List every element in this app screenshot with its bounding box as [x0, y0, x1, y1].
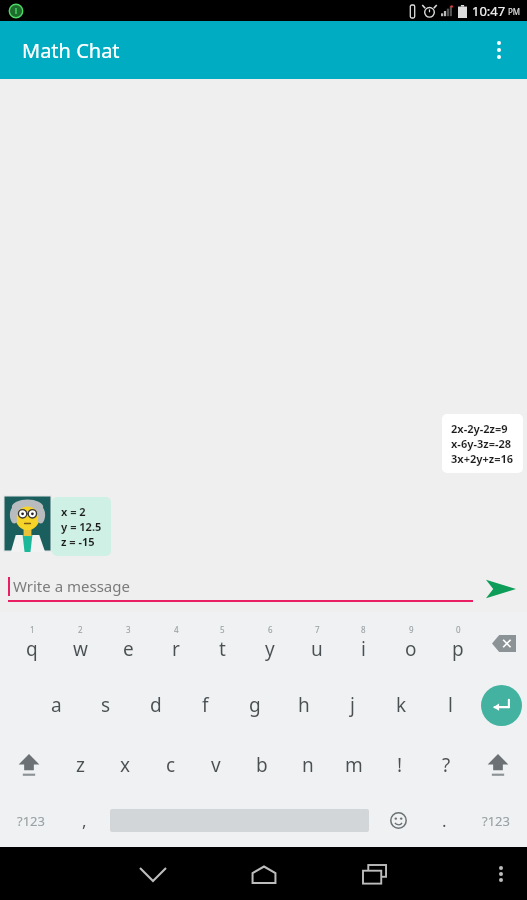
button[interactable]: 1	[8, 612, 56, 674]
button[interactable]: Backspace	[481, 612, 527, 674]
staticText: ,	[82, 809, 87, 832]
button[interactable]: c	[148, 736, 193, 794]
button[interactable]: 9	[387, 612, 434, 674]
staticText: t	[219, 636, 226, 662]
staticText: u	[311, 636, 323, 662]
button[interactable]: x = 2	[52, 497, 111, 556]
staticText: 9	[409, 624, 414, 635]
staticText: z = -15	[61, 534, 95, 549]
button[interactable]: a	[31, 674, 81, 736]
button[interactable]: m	[331, 736, 377, 794]
button[interactable]: ,	[62, 794, 106, 847]
button[interactable]: 5	[199, 612, 246, 674]
staticText: l	[448, 692, 453, 718]
button[interactable]: Emoji	[373, 794, 423, 847]
staticText: n	[302, 752, 314, 778]
button[interactable]: More options	[477, 28, 521, 72]
button[interactable]: Recent apps	[349, 848, 401, 900]
button[interactable]: g	[230, 674, 279, 736]
staticText: Math Chat	[22, 37, 120, 64]
staticText: 2x-2y-2z=9	[451, 421, 508, 436]
button[interactable]: d	[131, 674, 181, 736]
button[interactable]: f	[181, 674, 230, 736]
staticText: 5	[220, 624, 225, 635]
staticText: s	[101, 692, 111, 718]
button[interactable]: 3	[104, 612, 152, 674]
staticText: b	[256, 752, 268, 778]
button[interactable]: Enter	[475, 674, 527, 736]
staticText: x	[120, 752, 131, 778]
staticText: 2	[78, 624, 83, 635]
staticText: o	[405, 636, 417, 662]
staticText: Write a message	[13, 576, 130, 596]
button[interactable]: 6	[246, 612, 293, 674]
staticText: 10:47	[472, 2, 506, 20]
staticText: a	[51, 692, 62, 718]
staticText: ?	[442, 752, 451, 778]
button[interactable]: k	[377, 674, 426, 736]
staticText: i	[361, 636, 366, 662]
button[interactable]: j	[328, 674, 377, 736]
staticText: g	[249, 692, 261, 718]
staticText: ?123	[17, 812, 45, 830]
staticText: 8	[361, 624, 366, 635]
button[interactable]: ?123	[465, 794, 527, 847]
button[interactable]: Shift	[469, 736, 527, 794]
staticText: r	[172, 636, 180, 662]
staticText: m	[345, 752, 363, 778]
staticText: f	[202, 692, 209, 718]
button[interactable]: x	[103, 736, 148, 794]
button[interactable]: 4	[152, 612, 199, 674]
staticText: v	[211, 752, 221, 778]
button[interactable]: Send	[479, 567, 523, 611]
staticText: x-6y-3z=-28	[451, 436, 512, 451]
button[interactable]: Home	[238, 848, 290, 900]
staticText: 4	[174, 624, 179, 635]
button[interactable]: 2x-2y-2z=9	[442, 414, 523, 473]
button[interactable]: 0	[434, 612, 481, 674]
staticText: y	[265, 636, 275, 662]
button[interactable]: ?	[423, 736, 469, 794]
staticText: PM	[508, 6, 521, 17]
button[interactable]: s	[81, 674, 131, 736]
button[interactable]: Write a message	[8, 576, 473, 602]
button[interactable]: v	[193, 736, 239, 794]
staticText: p	[452, 636, 464, 662]
staticText: 3x+2y+z=16	[451, 451, 514, 466]
staticText: 0	[456, 624, 461, 635]
button[interactable]: 2	[56, 612, 104, 674]
button[interactable]: !	[377, 736, 423, 794]
button[interactable]: z	[58, 736, 103, 794]
staticText: 3	[126, 624, 131, 635]
staticText: e	[123, 636, 134, 662]
staticText: q	[26, 636, 38, 662]
button[interactable]: 7	[293, 612, 340, 674]
button[interactable]: h	[279, 674, 328, 736]
staticText: y = 12.5	[61, 519, 102, 534]
staticText: 7	[315, 624, 320, 635]
staticText: h	[298, 692, 310, 718]
button[interactable]: Shift	[0, 736, 58, 794]
staticText: k	[396, 692, 407, 718]
button[interactable]: Hide keyboard	[127, 848, 179, 900]
staticText: c	[166, 752, 176, 778]
staticText: j	[350, 692, 355, 718]
button[interactable]: More options	[479, 852, 523, 896]
staticText: 1	[30, 624, 35, 635]
button[interactable]: l	[426, 674, 475, 736]
button[interactable]: 8	[340, 612, 387, 674]
staticText: w	[73, 636, 88, 662]
staticText: .	[442, 809, 447, 832]
button[interactable]: ?123	[0, 794, 62, 847]
staticText: 6	[268, 624, 273, 635]
staticText: z	[76, 752, 85, 778]
button[interactable]: b	[239, 736, 285, 794]
button[interactable]: n	[285, 736, 331, 794]
staticText: ?123	[482, 812, 510, 830]
staticText: d	[150, 692, 162, 718]
staticText: !	[397, 752, 403, 778]
button[interactable]: .	[423, 794, 465, 847]
staticText: x = 2	[61, 504, 86, 519]
